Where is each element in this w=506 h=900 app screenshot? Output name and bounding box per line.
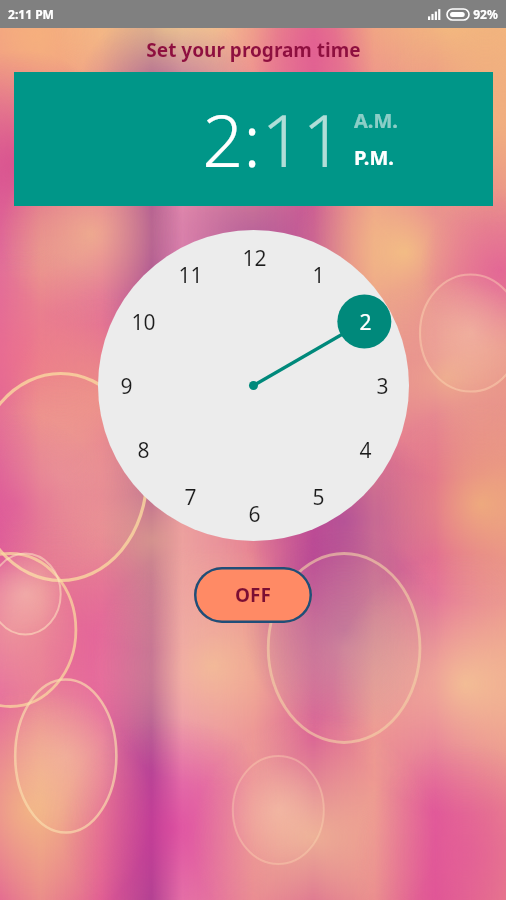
- staticText: 11: [178, 261, 203, 290]
- button[interactable]: 11: [261, 90, 344, 188]
- staticText: 10: [131, 308, 156, 337]
- staticText: Set your program time: [146, 37, 361, 63]
- button[interactable]: 12: [236, 240, 272, 276]
- button[interactable]: 2: [347, 304, 383, 340]
- button[interactable]: P.M.: [354, 144, 394, 171]
- button[interactable]: 6: [236, 496, 272, 532]
- staticText: 2:11 PM: [8, 6, 54, 22]
- button[interactable]: 4: [347, 432, 383, 468]
- staticText: 92%: [473, 6, 498, 22]
- button[interactable]: 3: [364, 368, 400, 404]
- staticText: 1: [312, 261, 325, 290]
- button[interactable]: 1: [300, 257, 336, 293]
- button[interactable]: Clock face hour picker: [98, 230, 409, 541]
- button[interactable]: 8: [125, 432, 161, 468]
- button[interactable]: 2:: [202, 90, 261, 188]
- staticText: 7: [184, 483, 197, 512]
- button[interactable]: A.M.: [354, 107, 398, 134]
- staticText: 3: [376, 372, 389, 401]
- staticText: 4: [359, 436, 372, 465]
- staticText: 9: [120, 372, 133, 401]
- staticText: 2: [359, 308, 372, 337]
- button[interactable]: 11: [172, 257, 208, 293]
- button[interactable]: 2:: [14, 72, 493, 206]
- staticText: OFF: [235, 582, 271, 608]
- staticText: 6: [248, 500, 261, 529]
- button[interactable]: 5: [300, 479, 336, 515]
- button[interactable]: 9: [108, 368, 144, 404]
- staticText: 5: [312, 483, 325, 512]
- staticText: 12: [242, 244, 267, 273]
- button[interactable]: OFF: [194, 567, 312, 623]
- button[interactable]: 7: [172, 479, 208, 515]
- button[interactable]: 10: [125, 304, 161, 340]
- staticText: 8: [137, 436, 150, 465]
